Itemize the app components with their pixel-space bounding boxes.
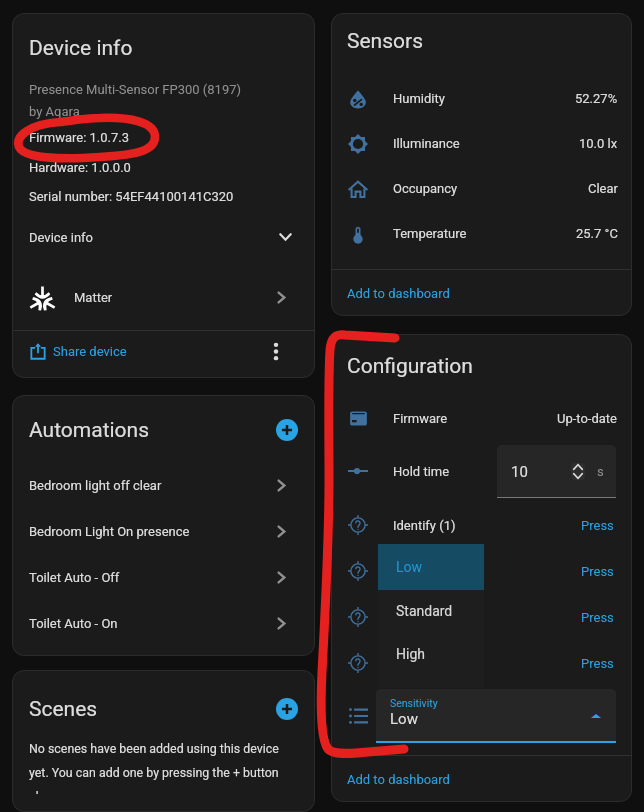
staticText: 10.0 lx [579,136,618,151]
staticText: Occupancy [393,181,458,196]
button[interactable]: Illuminance [344,121,618,166]
staticText: s [597,464,604,479]
staticText: Hardware: 1.0.0.0 [29,160,298,175]
staticText: 52.27% [575,91,618,106]
button[interactable]: Firmware [344,396,618,440]
staticText: 25.7 °C [576,226,618,241]
staticText: Add to dashboard [347,286,450,301]
staticText: Sensitivity [390,697,438,709]
button[interactable]: Bedroom Light On presence [29,508,286,554]
staticText: Automations [29,418,150,443]
staticText: Temperature [393,226,467,241]
button[interactable]: Low [396,544,484,590]
staticText: Presence Multi-Sensor FP300 (8197) [29,82,298,97]
staticText: Press [581,656,614,671]
button[interactable]: Add to dashboard [347,270,616,316]
staticText: Bedroom light off clear [29,478,162,493]
staticText: Configuration [347,354,473,379]
staticText: Toilet Auto - On [29,616,118,631]
button[interactable]: Press [577,604,618,631]
staticText: Scenes [29,697,98,722]
button[interactable]: Toilet Auto - Off [29,554,286,600]
button[interactable]: Press [577,512,618,539]
button[interactable]: Toilet Auto - On [29,600,286,646]
staticText: Press [581,518,614,533]
staticText: Up-to-date [557,411,618,426]
button[interactable]: Press [577,558,618,585]
button[interactable]: Temperature [344,211,618,256]
button[interactable]: Share device [29,331,279,371]
button[interactable]: Standard [396,590,484,632]
button[interactable]: Sensitivity [376,689,616,743]
button[interactable]: More options [273,343,279,360]
staticText: Device info [29,230,93,245]
staticText: Share device [53,344,127,359]
staticText: Bedroom Light On presence [29,524,190,539]
staticText: Sensors [347,29,423,54]
button[interactable]: Occupancy [344,166,618,211]
button[interactable]: Matter [29,264,286,330]
button[interactable]: Bedroom light off clear [29,462,286,508]
staticText: by Aqara [29,104,298,119]
staticText: Firmware: 1.0.7.3 [29,130,298,145]
staticText: High [396,646,425,662]
staticText: Illuminance [393,136,460,151]
button[interactable]: Add scene [276,698,298,720]
button[interactable]: Press [577,650,618,677]
staticText: Matter [74,290,113,305]
button[interactable]: Add to dashboard [347,756,616,802]
staticText: Device info [29,36,133,61]
button[interactable]: 10 [497,445,616,498]
staticText: Identify (1) [393,518,456,533]
staticText: 10 [511,463,528,481]
button[interactable]: High [396,636,484,672]
staticText: Serial number: 54EF44100141C320 [29,189,298,204]
button[interactable]: Device info [29,210,292,264]
staticText: Clear [588,181,618,196]
staticText: No scenes have been added using this dev… [29,741,298,794]
button[interactable]: Add automation [276,419,298,441]
staticText: Humidity [393,91,445,106]
staticText: Low [396,559,423,575]
staticText: Low [390,710,418,728]
staticText: Press [581,564,614,579]
staticText: Standard [396,603,453,619]
button[interactable]: Humidity [344,76,618,121]
staticText: Firmware [393,411,448,426]
staticText: Toilet Auto - Off [29,570,120,585]
staticText: Hold time [393,464,450,479]
staticText: Press [581,610,614,625]
staticText: Add to dashboard [347,772,450,787]
